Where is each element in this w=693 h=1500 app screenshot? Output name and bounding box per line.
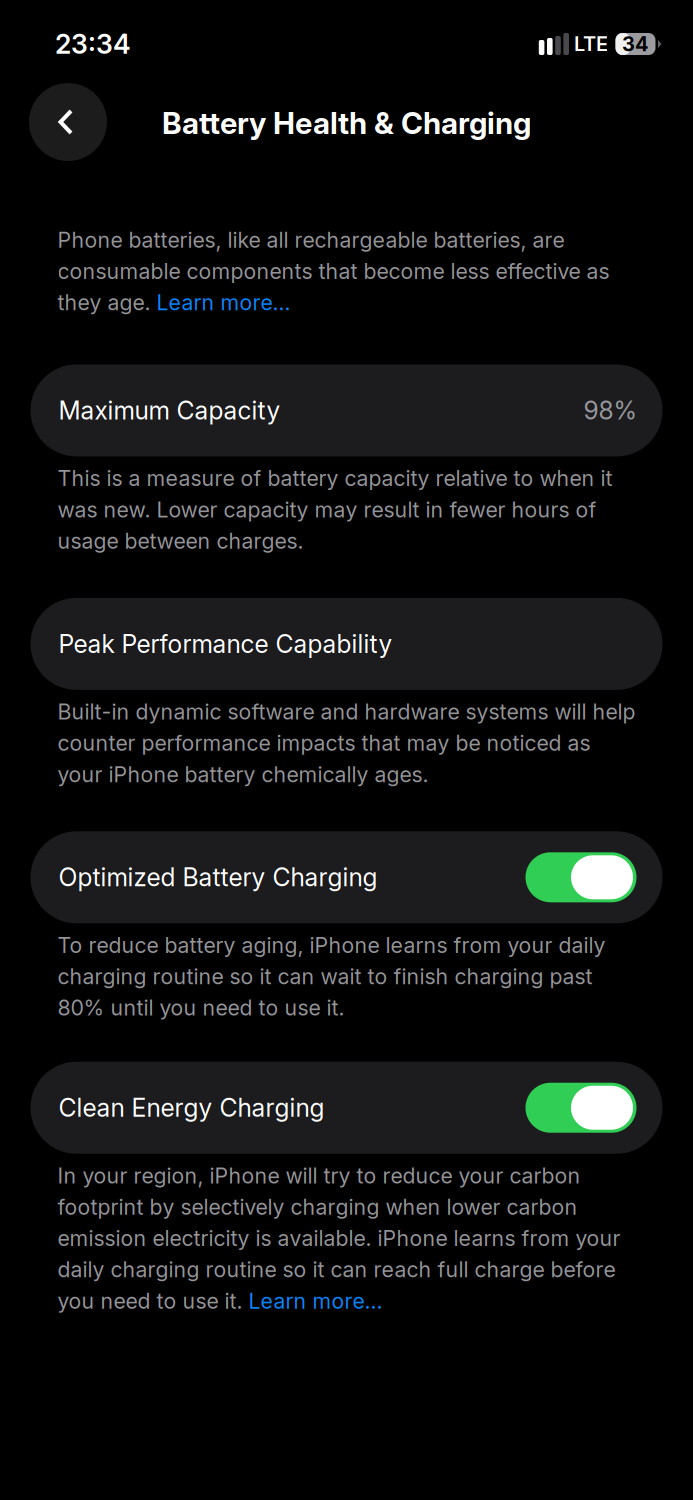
button[interactable]: Back: [29, 83, 107, 161]
staticText: To reduce battery aging, iPhone learns f…: [57, 932, 605, 1021]
staticText: Peak Performance Capability: [58, 629, 392, 659]
staticText: In your region, iPhone will try to reduc…: [57, 1163, 620, 1314]
button[interactable]: Optimized Battery Charging: [30, 831, 662, 923]
button[interactable]: Maximum Capacity: [30, 364, 662, 456]
staticText: 23:34: [55, 28, 131, 60]
staticText: Battery Health & Charging: [162, 105, 531, 141]
button[interactable]: Peak Performance Capability: [30, 598, 662, 690]
staticText: Maximum Capacity: [58, 395, 280, 425]
staticText: Phone batteries, like all rechargeable b…: [57, 227, 609, 315]
staticText: Optimized Battery Charging: [58, 862, 377, 892]
staticText: Clean Energy Charging: [58, 1093, 324, 1123]
staticText: 98%: [583, 395, 636, 425]
staticText: This is a measure of battery capacity re…: [57, 465, 612, 554]
staticText: Built-in dynamic software and hardware s…: [57, 699, 635, 787]
button[interactable]: Clean Energy Charging: [30, 1062, 662, 1154]
staticText: LTE: [574, 32, 608, 56]
staticText: 34: [622, 32, 649, 56]
